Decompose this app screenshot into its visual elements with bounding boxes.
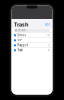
staticText: Flagged [17, 43, 28, 47]
button[interactable]: Search [11, 28, 52, 33]
button[interactable]: Edit [45, 23, 50, 26]
staticText: Search [18, 28, 26, 32]
staticText: Inbox [17, 33, 25, 37]
staticText: Trash [17, 48, 23, 52]
button[interactable]: VIP [11, 38, 52, 43]
staticText: Trash [14, 21, 28, 28]
staticText: VIP [17, 38, 22, 42]
button[interactable]: Trash [11, 48, 52, 53]
staticText: Edit [45, 23, 50, 26]
staticText: 8 [48, 48, 50, 52]
button[interactable]: Flagged [11, 43, 52, 48]
button[interactable]: Inbox [11, 33, 52, 38]
staticText: 24 [46, 33, 50, 37]
staticText: 3 [48, 43, 50, 47]
